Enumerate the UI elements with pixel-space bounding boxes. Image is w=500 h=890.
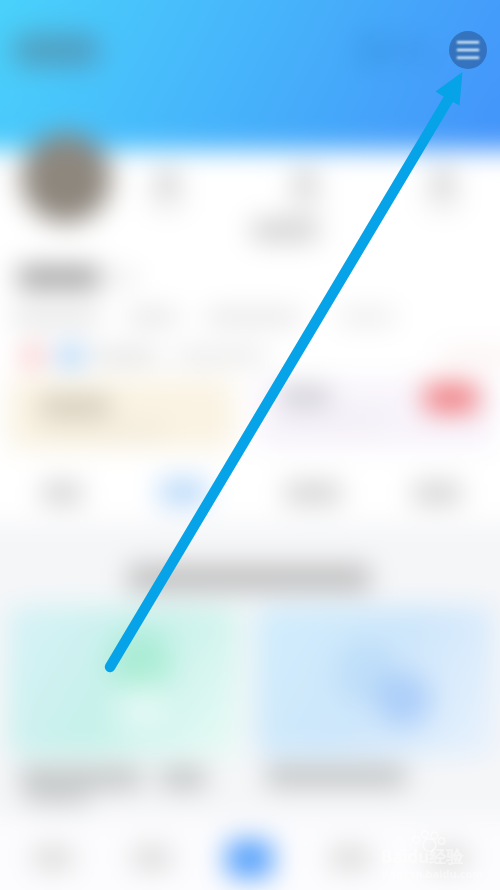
- button[interactable]: Menu: [449, 31, 487, 69]
- staticText: jingyan.baidu.com: [382, 866, 484, 881]
- staticText: Baidu经验: [381, 845, 464, 868]
